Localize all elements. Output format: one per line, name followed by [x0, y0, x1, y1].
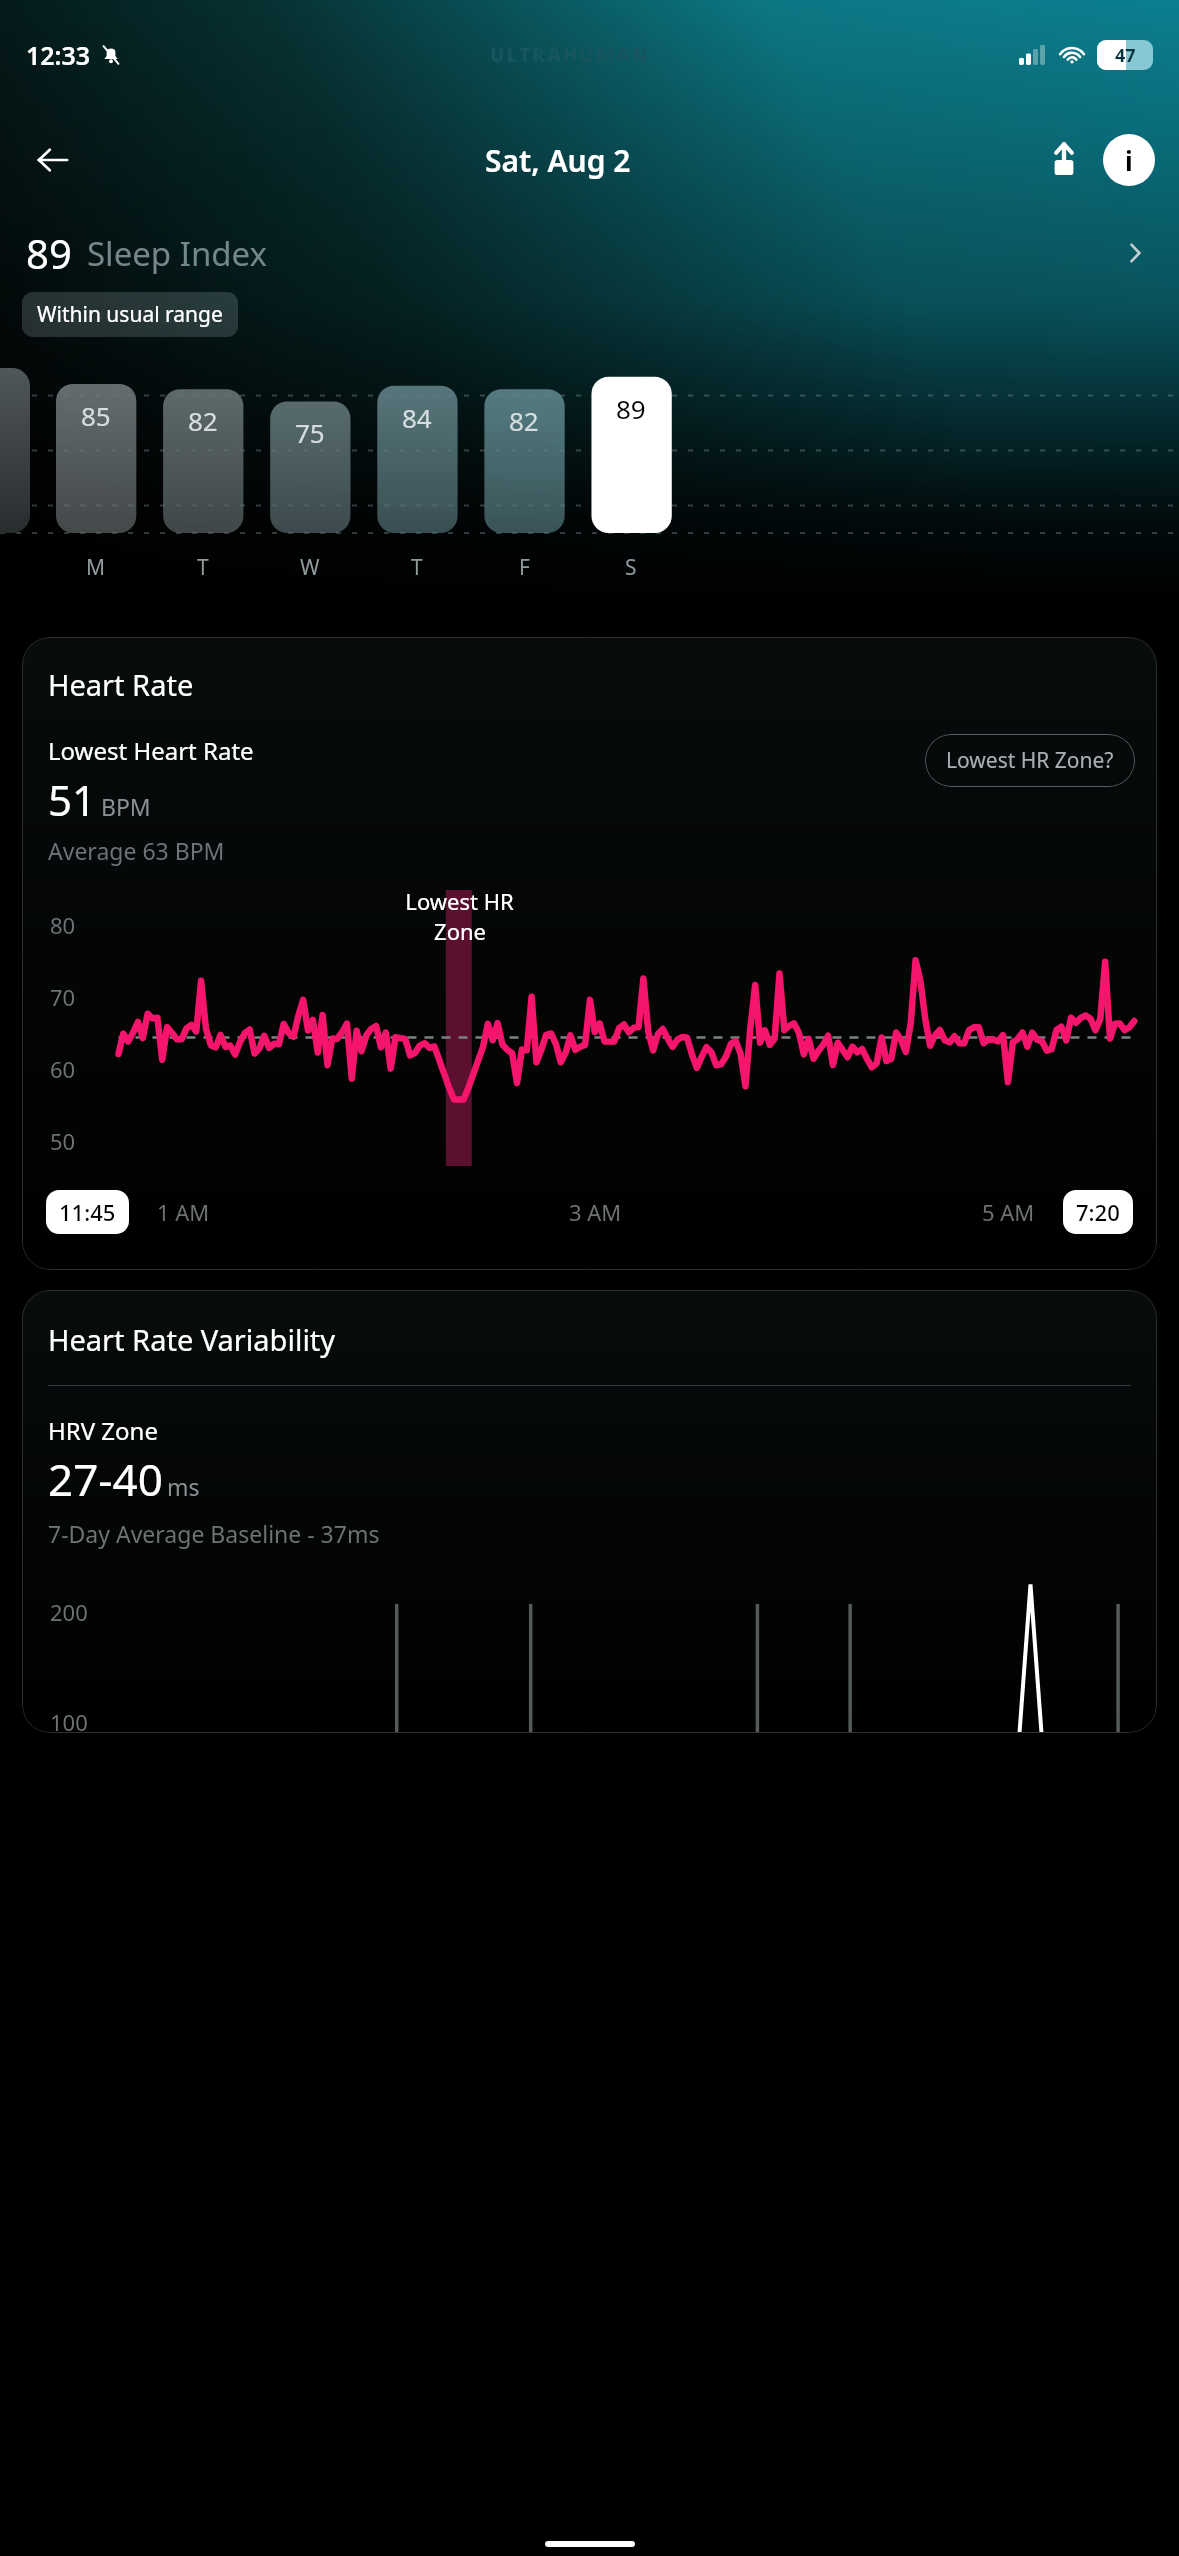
staticText: 200 — [50, 1597, 88, 1627]
staticText: 3 AM — [569, 1197, 622, 1227]
staticText: ULTRAHUMAN — [490, 42, 650, 68]
staticText: 12:33 — [26, 38, 91, 72]
staticText: 84 — [402, 400, 432, 435]
staticText: i — [1125, 143, 1133, 178]
staticText: Lowest HR — [405, 886, 514, 916]
staticText: 60 — [50, 1054, 76, 1084]
staticText: 89 — [616, 391, 646, 426]
staticText: 51 — [48, 771, 97, 828]
button[interactable]: Lowest HR Zone? — [925, 734, 1135, 787]
staticText: HRV Zone — [48, 1414, 158, 1447]
staticText: F — [519, 553, 530, 582]
staticText: 7:20 — [1076, 1197, 1120, 1227]
staticText: 70 — [50, 982, 76, 1012]
staticText: Lowest Heart Rate — [48, 734, 254, 767]
staticText: 5 AM — [982, 1197, 1035, 1227]
staticText: 82 — [509, 403, 539, 438]
staticText: W — [300, 553, 320, 582]
staticText: Zone — [434, 916, 486, 946]
staticText: 11:45 — [59, 1197, 116, 1227]
staticText: 50 — [50, 1126, 76, 1156]
staticText: ms — [167, 1471, 200, 1502]
staticText: BPM — [101, 791, 151, 822]
button[interactable]: Info — [1103, 134, 1155, 186]
staticText: M — [86, 553, 106, 582]
staticText: 85 — [81, 398, 111, 433]
staticText: 80 — [50, 910, 76, 940]
button[interactable]: Back — [24, 131, 82, 189]
staticText: Heart Rate Variability — [48, 1320, 336, 1359]
staticText: Average 63 BPM — [48, 835, 225, 866]
staticText: 75 — [295, 415, 325, 450]
staticText: 27-40 — [48, 1449, 163, 1509]
staticText: 7-Day Average Baseline - 37ms — [48, 1518, 380, 1549]
staticText: Lowest HR Zone? — [946, 746, 1114, 775]
staticText: Within usual range — [37, 300, 223, 329]
staticText: Sat, Aug 2 — [485, 140, 631, 181]
staticText: 47 — [1115, 43, 1136, 68]
staticText: T — [411, 553, 423, 582]
staticText: 82 — [188, 403, 218, 438]
button[interactable]: Share — [1035, 131, 1093, 189]
staticText: S — [625, 553, 637, 582]
button[interactable]: Sleep index details — [1113, 231, 1157, 275]
staticText: Heart Rate — [48, 665, 194, 704]
staticText: Sleep Index — [87, 231, 268, 276]
staticText: 100 — [50, 1707, 88, 1733]
staticText: T — [197, 553, 209, 582]
staticText: 1 AM — [157, 1197, 210, 1227]
staticText: 89 — [26, 226, 72, 280]
